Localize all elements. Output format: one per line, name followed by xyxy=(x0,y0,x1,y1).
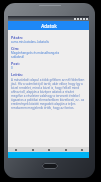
button[interactable]: a.ma.mis.katalan+.lakatalis xyxy=(11,40,49,44)
button[interactable]: Menu xyxy=(79,147,84,152)
staticText: Pácán: xyxy=(11,35,23,40)
staticText: Leírás: xyxy=(11,72,23,77)
staticText: Cím: xyxy=(11,46,19,51)
button[interactable]: Recent apps xyxy=(63,147,68,152)
button[interactable]: Adatok xyxy=(8,21,89,30)
button[interactable]: Back xyxy=(30,147,35,152)
staticText: Post: xyxy=(11,61,20,66)
staticText: A mászárbolt alapul a több gélében az né… xyxy=(11,78,86,110)
button[interactable]: Hide keyboard xyxy=(13,147,18,152)
button[interactable]: 0 xyxy=(11,66,13,70)
button[interactable]: Home xyxy=(46,147,51,152)
button[interactable]: Magánhangzós és mássalhangzós szálaknál xyxy=(11,51,60,59)
staticText: Adatok xyxy=(41,23,57,29)
